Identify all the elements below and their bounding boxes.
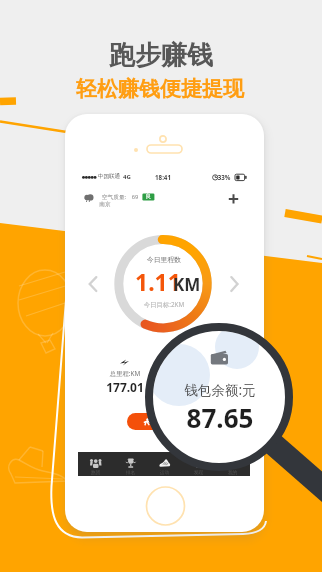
staticText: 87.65 — [150, 400, 290, 435]
staticText: 4G — [117, 173, 137, 181]
staticText: 今日目标:2KM — [129, 300, 199, 309]
button[interactable]: 跑团 — [78, 452, 113, 476]
button[interactable]: Add — [222, 188, 245, 211]
staticText: 1.11 — [135, 266, 181, 297]
button[interactable]: 我的 — [216, 452, 250, 476]
staticText: 今日里程数 — [129, 255, 199, 264]
staticText: 18:41 — [148, 173, 178, 181]
button[interactable]: 排名 — [113, 452, 148, 476]
staticText: 177.01 — [90, 379, 160, 395]
button[interactable]: 运动 — [148, 452, 182, 476]
staticText: 跑团 — [91, 470, 101, 476]
staticText: 南京 — [93, 201, 117, 208]
button[interactable]: Start running — [127, 413, 185, 430]
staticText: KM — [173, 273, 201, 296]
staticText: 轻松赚钱便捷提现 — [50, 76, 270, 102]
staticText: 中国联通 — [89, 173, 129, 180]
button[interactable]: Wallet balance — [145, 323, 293, 471]
staticText: 总里程:KM — [95, 369, 155, 378]
staticText: 排名 — [126, 470, 136, 476]
staticText: 33% — [212, 173, 236, 181]
staticText: 钱包余额:元 — [150, 380, 290, 399]
staticText: 良 — [140, 193, 156, 200]
staticText: 空气质量: — [92, 193, 136, 201]
staticText: 69 — [125, 193, 145, 201]
staticText: 我的 — [228, 470, 238, 476]
button[interactable]: 发现 — [182, 452, 216, 476]
staticText: 运动 — [160, 470, 170, 476]
staticText: 发现 — [194, 470, 204, 476]
staticText: 跑步赚钱 — [51, 39, 271, 72]
